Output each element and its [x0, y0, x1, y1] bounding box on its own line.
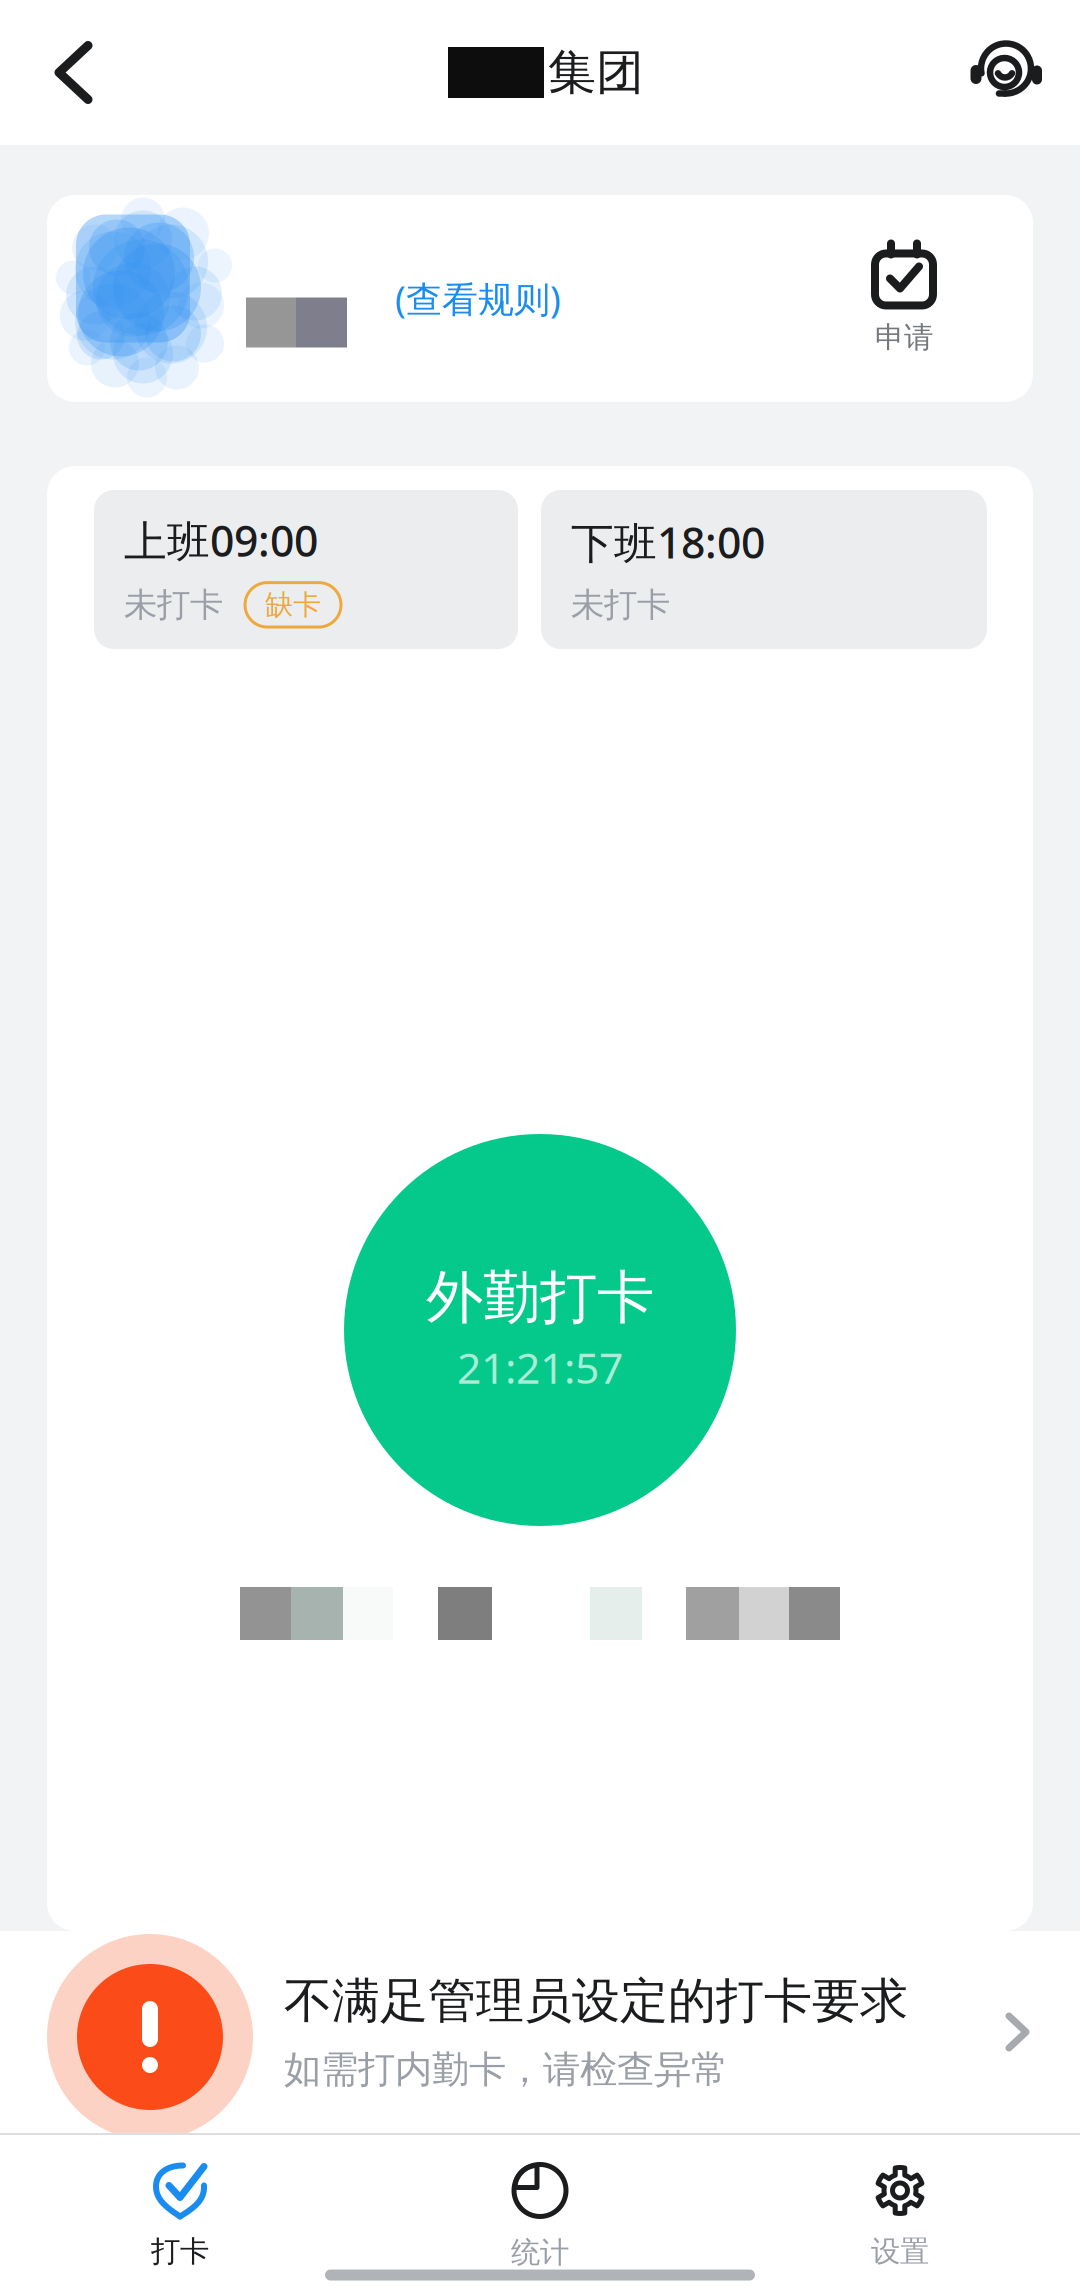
- button[interactable]: 不满足管理员设定的打卡要求: [0, 1931, 1080, 2133]
- button[interactable]: 外勤打卡: [330, 1134, 750, 1526]
- staticText: 下班18:00: [571, 514, 765, 570]
- staticText: 集团: [548, 43, 644, 102]
- button[interactable]: 在线客服: [954, 0, 1058, 145]
- button[interactable]: (查看规则): [0, 195, 1080, 402]
- button[interactable]: 设置: [720, 2161, 1080, 2269]
- staticText: (查看规则): [395, 275, 561, 322]
- button[interactable]: 统计: [360, 2161, 720, 2269]
- staticText: 打卡: [151, 2233, 209, 2269]
- staticText: 统计: [511, 2234, 569, 2270]
- staticText: 不满足管理员设定的打卡要求: [284, 1972, 908, 2031]
- staticText: 未打卡: [571, 584, 670, 625]
- button[interactable]: 返回: [22, 0, 126, 145]
- staticText: 申请: [875, 319, 933, 355]
- button[interactable]: 打卡: [0, 2161, 360, 2269]
- staticText: 外勤打卡: [426, 1262, 654, 1333]
- staticText: 上班09:00: [124, 512, 318, 569]
- staticText: 缺卡: [265, 588, 321, 622]
- staticText: 如需打内勤卡，请检查异常: [284, 2047, 728, 2092]
- staticText: 未打卡: [124, 584, 223, 625]
- staticText: 设置: [871, 2233, 929, 2269]
- staticText: 21:21:57: [457, 1339, 623, 1396]
